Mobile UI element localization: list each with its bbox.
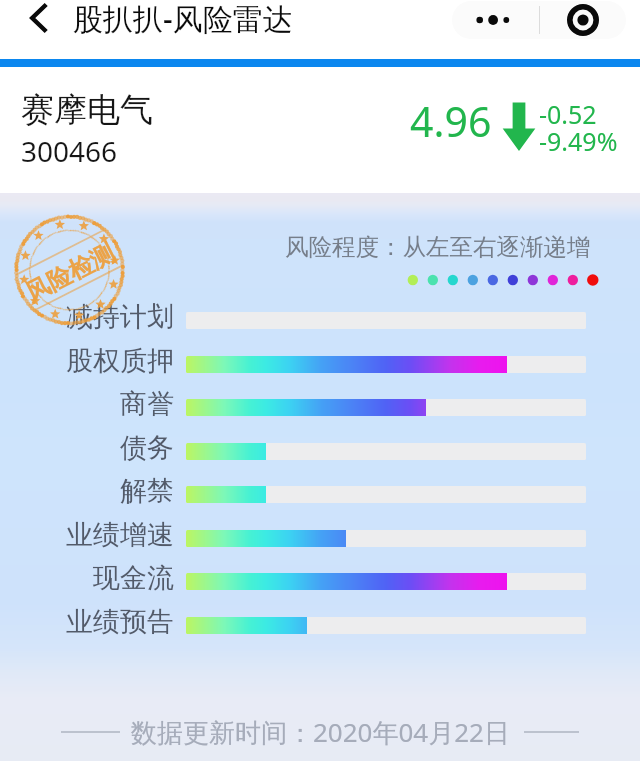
staticText: 股权质押: [66, 344, 174, 378]
staticText: 业绩预告: [66, 605, 174, 639]
button[interactable]: Close mini program: [539, 1, 626, 39]
button[interactable]: 业绩预告: [0, 604, 640, 647]
staticText: 业绩增速: [66, 518, 174, 552]
staticText: 风险检测: [20, 238, 120, 308]
button[interactable]: 解禁: [0, 473, 640, 516]
button[interactable]: 债务: [0, 430, 640, 473]
staticText: 商誉: [120, 387, 174, 421]
staticText: 数据更新时间：2020年04月22日: [131, 714, 510, 750]
button[interactable]: 业绩增速: [0, 517, 640, 560]
button[interactable]: 股权质押: [0, 343, 640, 386]
staticText: 现金流: [93, 561, 174, 595]
staticText: 解禁: [120, 474, 174, 508]
button[interactable]: 减持计划: [0, 299, 640, 342]
button[interactable]: 商誉: [0, 386, 640, 429]
staticText: 4.96: [410, 93, 492, 149]
button[interactable]: Back: [28, 0, 68, 40]
button[interactable]: 现金流: [0, 560, 640, 603]
staticText: 赛摩电气: [21, 89, 153, 131]
staticText: 股扒扒-风险雷达: [73, 0, 293, 38]
staticText: 风险程度：从左至右逐渐递增: [285, 232, 591, 262]
staticText: -9.49%: [539, 124, 618, 158]
button[interactable]: More options: [452, 1, 539, 39]
staticText: -0.52: [539, 97, 597, 131]
staticText: 300466: [21, 132, 118, 170]
staticText: 减持计划: [66, 300, 174, 334]
staticText: 债务: [120, 431, 174, 465]
